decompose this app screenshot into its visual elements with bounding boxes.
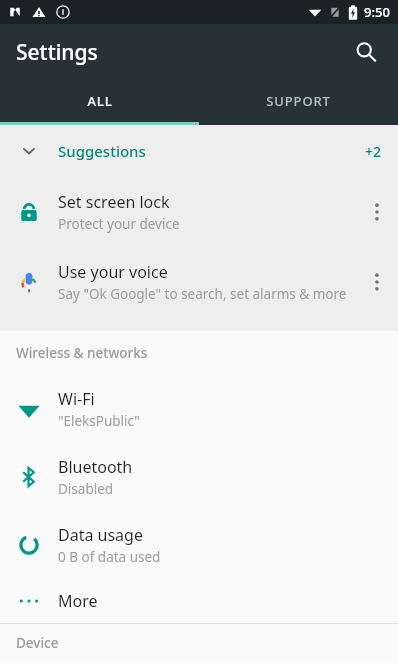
staticText: Say "Ok Google" to search, set alarms & … — [58, 285, 347, 303]
button[interactable]: More options — [356, 247, 398, 317]
button[interactable]: Search — [342, 28, 390, 76]
staticText: 9:50 — [364, 3, 390, 21]
staticText: Suggestions — [58, 141, 365, 161]
staticText: Use your voice — [58, 261, 168, 283]
button[interactable]: ALL — [0, 80, 199, 125]
button[interactable]: Suggestions — [0, 125, 398, 177]
staticText: Disabled — [58, 480, 114, 498]
staticText: Wi-Fi — [58, 388, 95, 410]
staticText: "EleksPublic" — [58, 412, 140, 430]
staticText: Device — [16, 634, 59, 652]
button[interactable]: Use your voice — [0, 247, 398, 317]
button[interactable]: Bluetooth — [0, 443, 398, 511]
staticText: Set screen lock — [58, 191, 170, 213]
staticText: SUPPORT — [266, 92, 331, 110]
staticText: +2 — [365, 142, 382, 161]
button[interactable]: More — [0, 579, 398, 623]
staticText: ALL — [87, 92, 113, 110]
button[interactable]: Data usage — [0, 511, 398, 579]
button[interactable]: SUPPORT — [199, 80, 398, 125]
button[interactable]: Wi-Fi — [0, 375, 398, 443]
staticText: 0 B of data used — [58, 548, 161, 566]
staticText: Protect your device — [58, 215, 180, 233]
staticText: Data usage — [58, 524, 143, 546]
staticText: Bluetooth — [58, 456, 133, 478]
staticText: Settings — [16, 38, 98, 67]
button[interactable]: Set screen lock — [0, 177, 398, 247]
staticText: Wireless & networks — [16, 344, 148, 362]
button[interactable]: More options — [356, 177, 398, 247]
staticText: More — [58, 590, 98, 612]
